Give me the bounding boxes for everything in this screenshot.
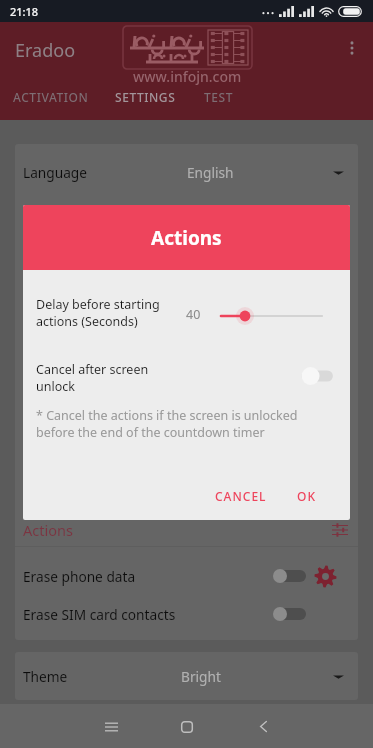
button[interactable]: Home [166, 706, 207, 747]
button[interactable]: Erase phone data [15, 557, 358, 595]
staticText: OK [297, 488, 316, 504]
button[interactable]: CANCEL [203, 479, 279, 513]
staticText: SETTINGS [115, 89, 176, 105]
staticText: Theme [23, 667, 68, 686]
staticText: English [187, 163, 234, 182]
staticText: 40 [186, 306, 201, 323]
staticText: Bright [181, 667, 221, 686]
staticText: CANCEL [215, 488, 267, 504]
staticText: TEST [204, 89, 233, 105]
staticText: ACTIVATION [13, 89, 89, 105]
button[interactable]: More options [331, 27, 373, 69]
button[interactable]: Theme [15, 652, 358, 700]
staticText: Erase SIM card contacts [23, 605, 176, 624]
staticText: Cancel after screen unlock [36, 361, 149, 395]
staticText: Erase phone data [23, 567, 136, 586]
staticText: * Cancel the actions if the screen is un… [36, 407, 298, 440]
staticText: Actions [151, 225, 222, 251]
button[interactable]: Cancel after screen unlock [291, 359, 337, 393]
button[interactable]: OK [285, 479, 328, 513]
staticText: Delay before starting actions (Seconds) [36, 296, 160, 330]
button[interactable]: Toggle [273, 564, 306, 588]
staticText: www.infojn.com [133, 67, 242, 86]
button[interactable]: TEST [189, 74, 248, 120]
button[interactable]: SETTINGS [102, 74, 189, 120]
button[interactable]: Erase SIM card contacts [15, 595, 358, 633]
staticText: 21:18 [10, 4, 39, 19]
button[interactable]: Recent apps [91, 706, 132, 747]
button[interactable]: Erase phone data settings [314, 565, 337, 588]
staticText: Language [23, 163, 88, 182]
staticText: Eradoo [15, 38, 76, 63]
button[interactable]: Language [15, 144, 358, 200]
button[interactable]: Action options [332, 522, 348, 538]
button[interactable]: Back [243, 706, 284, 747]
button[interactable]: ACTIVATION [0, 74, 102, 120]
staticText: Actions [23, 520, 73, 540]
button[interactable]: Delay slider [213, 304, 333, 328]
button[interactable]: Toggle [273, 602, 306, 626]
